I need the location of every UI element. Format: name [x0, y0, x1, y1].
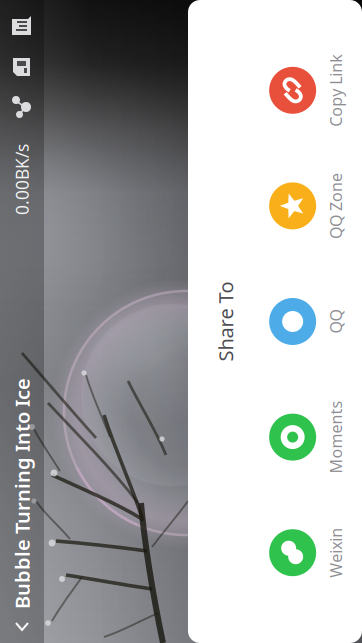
button[interactable]: QQ Zone [239, 398, 354, 498]
staticText: Moments [29, 466, 102, 487]
staticText: Share To [141, 353, 221, 379]
button[interactable]: Moments [8, 398, 123, 498]
staticText: QQ [169, 466, 193, 487]
staticText: Bubble Turning Into Ice [0, 149, 124, 176]
button[interactable]: QQ [123, 398, 239, 498]
